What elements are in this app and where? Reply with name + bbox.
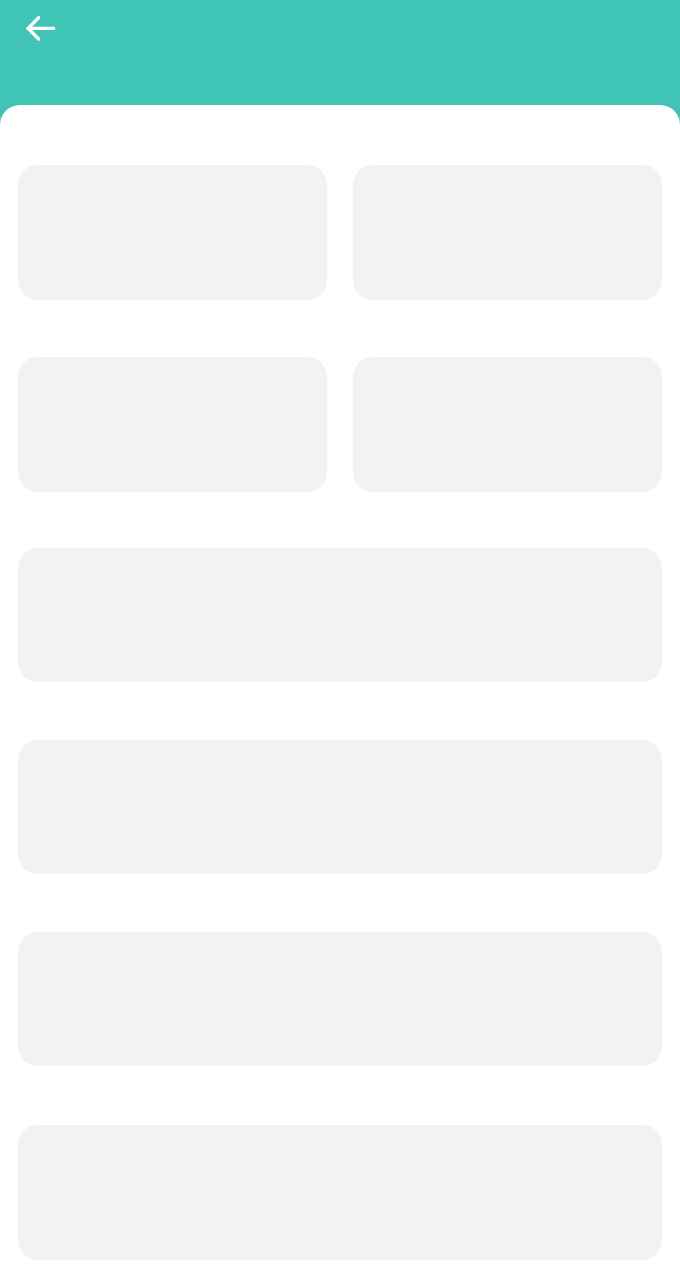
button[interactable]: Back <box>0 0 80 57</box>
